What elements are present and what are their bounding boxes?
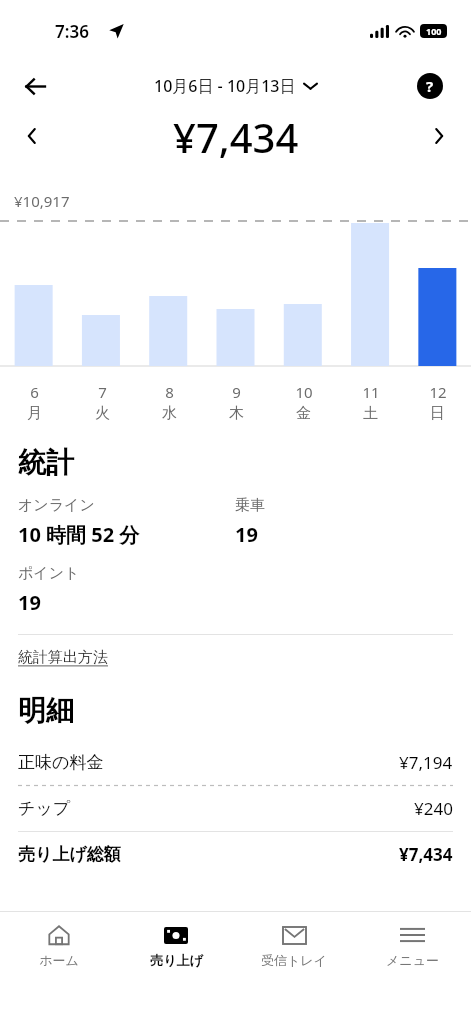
staticText: 6 <box>30 382 39 402</box>
staticText: 日 <box>430 404 445 423</box>
staticText: チップ <box>18 798 414 819</box>
staticText: 統計 <box>18 445 74 480</box>
staticText: 7:36 <box>55 20 89 43</box>
button[interactable]: Help <box>413 69 447 103</box>
staticText: ¥10,917 <box>14 191 70 211</box>
button[interactable]: 統計算出方法 <box>18 648 108 667</box>
staticText: メニュー <box>386 952 439 968</box>
staticText: 正味の料金 <box>18 752 399 773</box>
staticText: 乗車 <box>235 496 265 515</box>
staticText: 12 <box>429 382 447 402</box>
staticText: 火 <box>95 404 110 423</box>
staticText: ¥7,434 <box>399 843 453 866</box>
button[interactable]: メニュー <box>353 922 471 1024</box>
button[interactable]: 売り上げ <box>117 922 235 1024</box>
staticText: 月 <box>27 404 42 423</box>
staticText: ? <box>426 76 434 96</box>
staticText: 10 <box>295 382 313 402</box>
staticText: 11 <box>362 382 380 402</box>
staticText: 水 <box>162 404 177 423</box>
button[interactable]: 正味の料金 <box>18 740 453 785</box>
staticText: 19 <box>235 521 258 548</box>
staticText: 受信トレイ <box>261 952 327 968</box>
button[interactable]: ホーム <box>0 922 117 1024</box>
staticText: オンライン <box>18 496 95 515</box>
staticText: 明細 <box>18 693 74 728</box>
staticText: ホーム <box>39 952 79 968</box>
staticText: 8 <box>165 382 174 402</box>
button[interactable]: 売り上げ総額 <box>18 832 453 877</box>
staticText: 木 <box>229 404 244 423</box>
button[interactable]: Next week <box>421 118 457 154</box>
button[interactable]: 10月6日 - 10月13日 <box>154 75 317 97</box>
staticText: 10月6日 - 10月13日 <box>154 75 296 97</box>
staticText: ¥7,194 <box>399 751 453 774</box>
button[interactable]: Back <box>14 65 56 107</box>
staticText: 10 時間 52 分 <box>18 521 140 548</box>
staticText: 統計算出方法 <box>18 648 108 667</box>
staticText: ポイント <box>18 564 80 583</box>
staticText: ¥7,434 <box>173 110 299 162</box>
staticText: 金 <box>296 404 311 423</box>
staticText: ¥240 <box>414 797 453 820</box>
staticText: 9 <box>232 382 241 402</box>
staticText: 売り上げ総額 <box>18 844 399 865</box>
button[interactable]: 受信トレイ <box>235 922 353 1024</box>
staticText: 売り上げ <box>150 952 203 968</box>
staticText: 7 <box>98 382 107 402</box>
staticText: 19 <box>18 589 41 616</box>
staticText: 100 <box>426 25 442 37</box>
button[interactable]: チップ <box>18 786 453 831</box>
button[interactable]: Previous week <box>14 118 50 154</box>
staticText: 土 <box>363 404 378 423</box>
